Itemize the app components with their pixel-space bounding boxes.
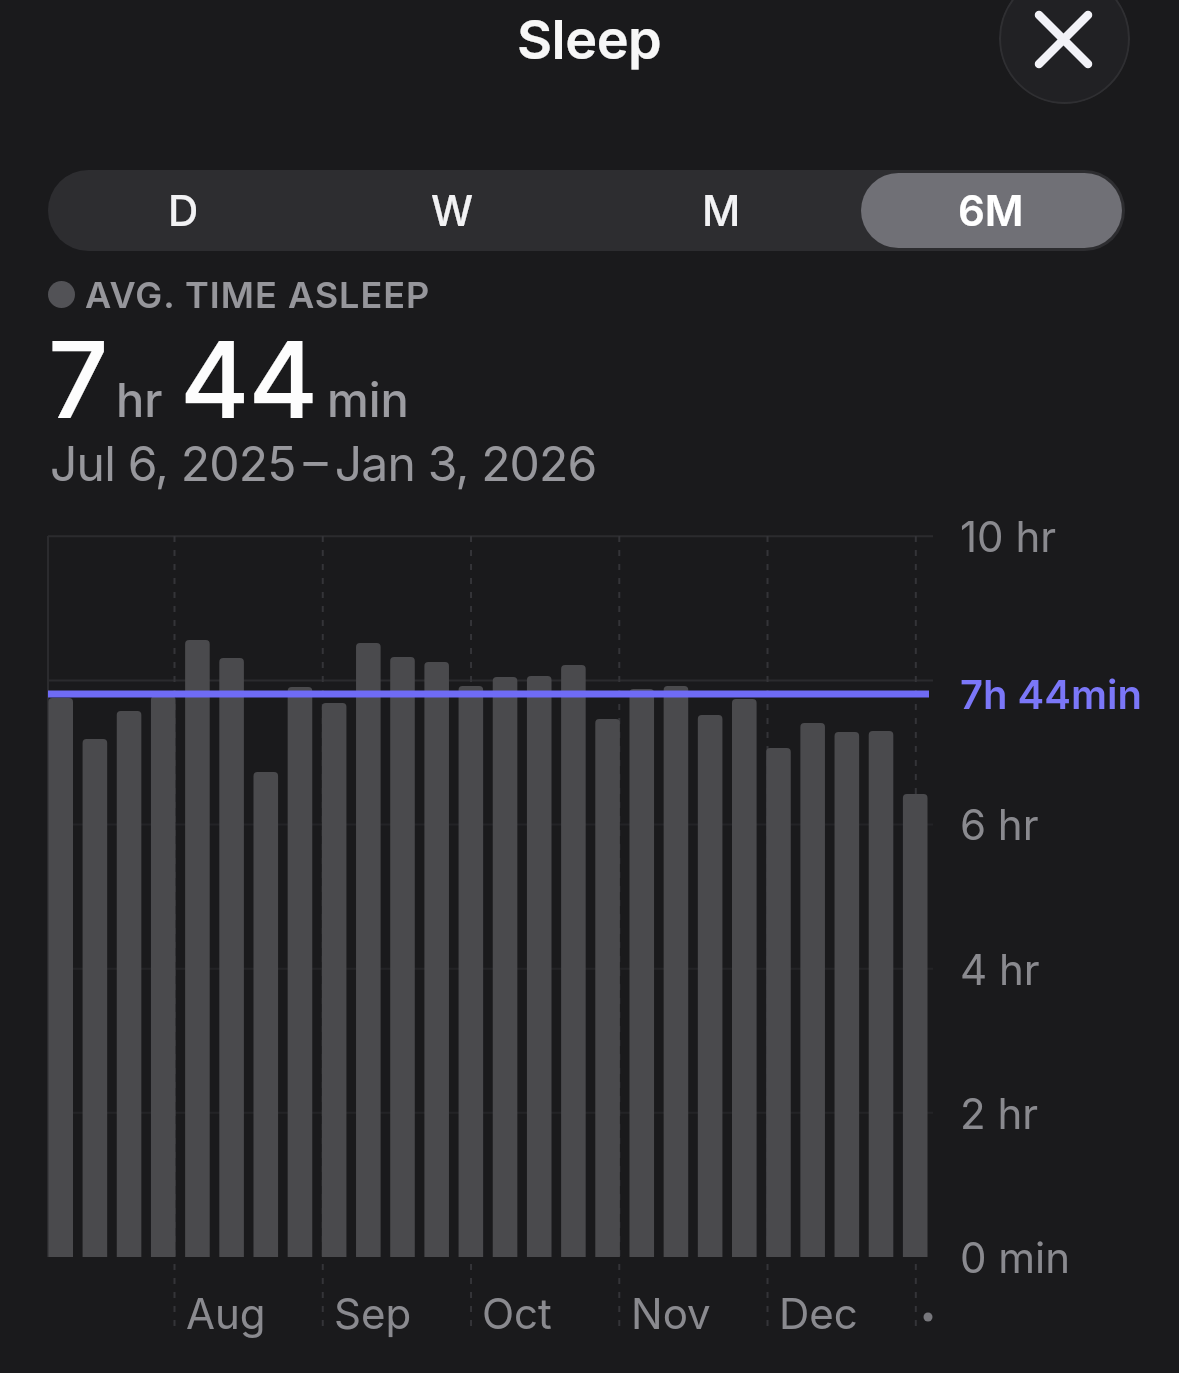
staticText: Sleep <box>517 7 662 72</box>
staticText: 0 min <box>960 1232 1071 1283</box>
button[interactable]: W <box>318 170 587 251</box>
staticText: 6M <box>958 185 1024 236</box>
staticText: 10 hr <box>960 511 1057 562</box>
button[interactable]: D <box>48 170 318 251</box>
button[interactable] <box>999 0 1130 104</box>
staticText: 7h 44min <box>960 670 1142 718</box>
staticText: Jul 6, 2025 – Jan 3, 2026 <box>50 434 597 492</box>
staticText: Oct <box>482 1288 552 1339</box>
staticText: 6 hr <box>960 799 1039 850</box>
staticText: min <box>327 371 409 428</box>
staticText: W <box>431 185 474 236</box>
staticText: Dec <box>779 1288 858 1339</box>
button[interactable]: 6M <box>856 170 1125 251</box>
staticText: D <box>168 185 199 236</box>
staticText: 44 <box>180 315 318 443</box>
staticText: 2 hr <box>960 1088 1039 1139</box>
staticText: Aug <box>186 1288 266 1339</box>
staticText: AVG. TIME ASLEEP <box>85 273 431 317</box>
button[interactable]: M <box>587 170 856 251</box>
staticText: M <box>702 185 741 236</box>
staticText: 7 <box>48 315 108 443</box>
staticText: 4 hr <box>960 944 1040 995</box>
staticText: Nov <box>631 1288 711 1339</box>
staticText: hr <box>116 371 163 428</box>
staticText: Sep <box>334 1288 412 1339</box>
